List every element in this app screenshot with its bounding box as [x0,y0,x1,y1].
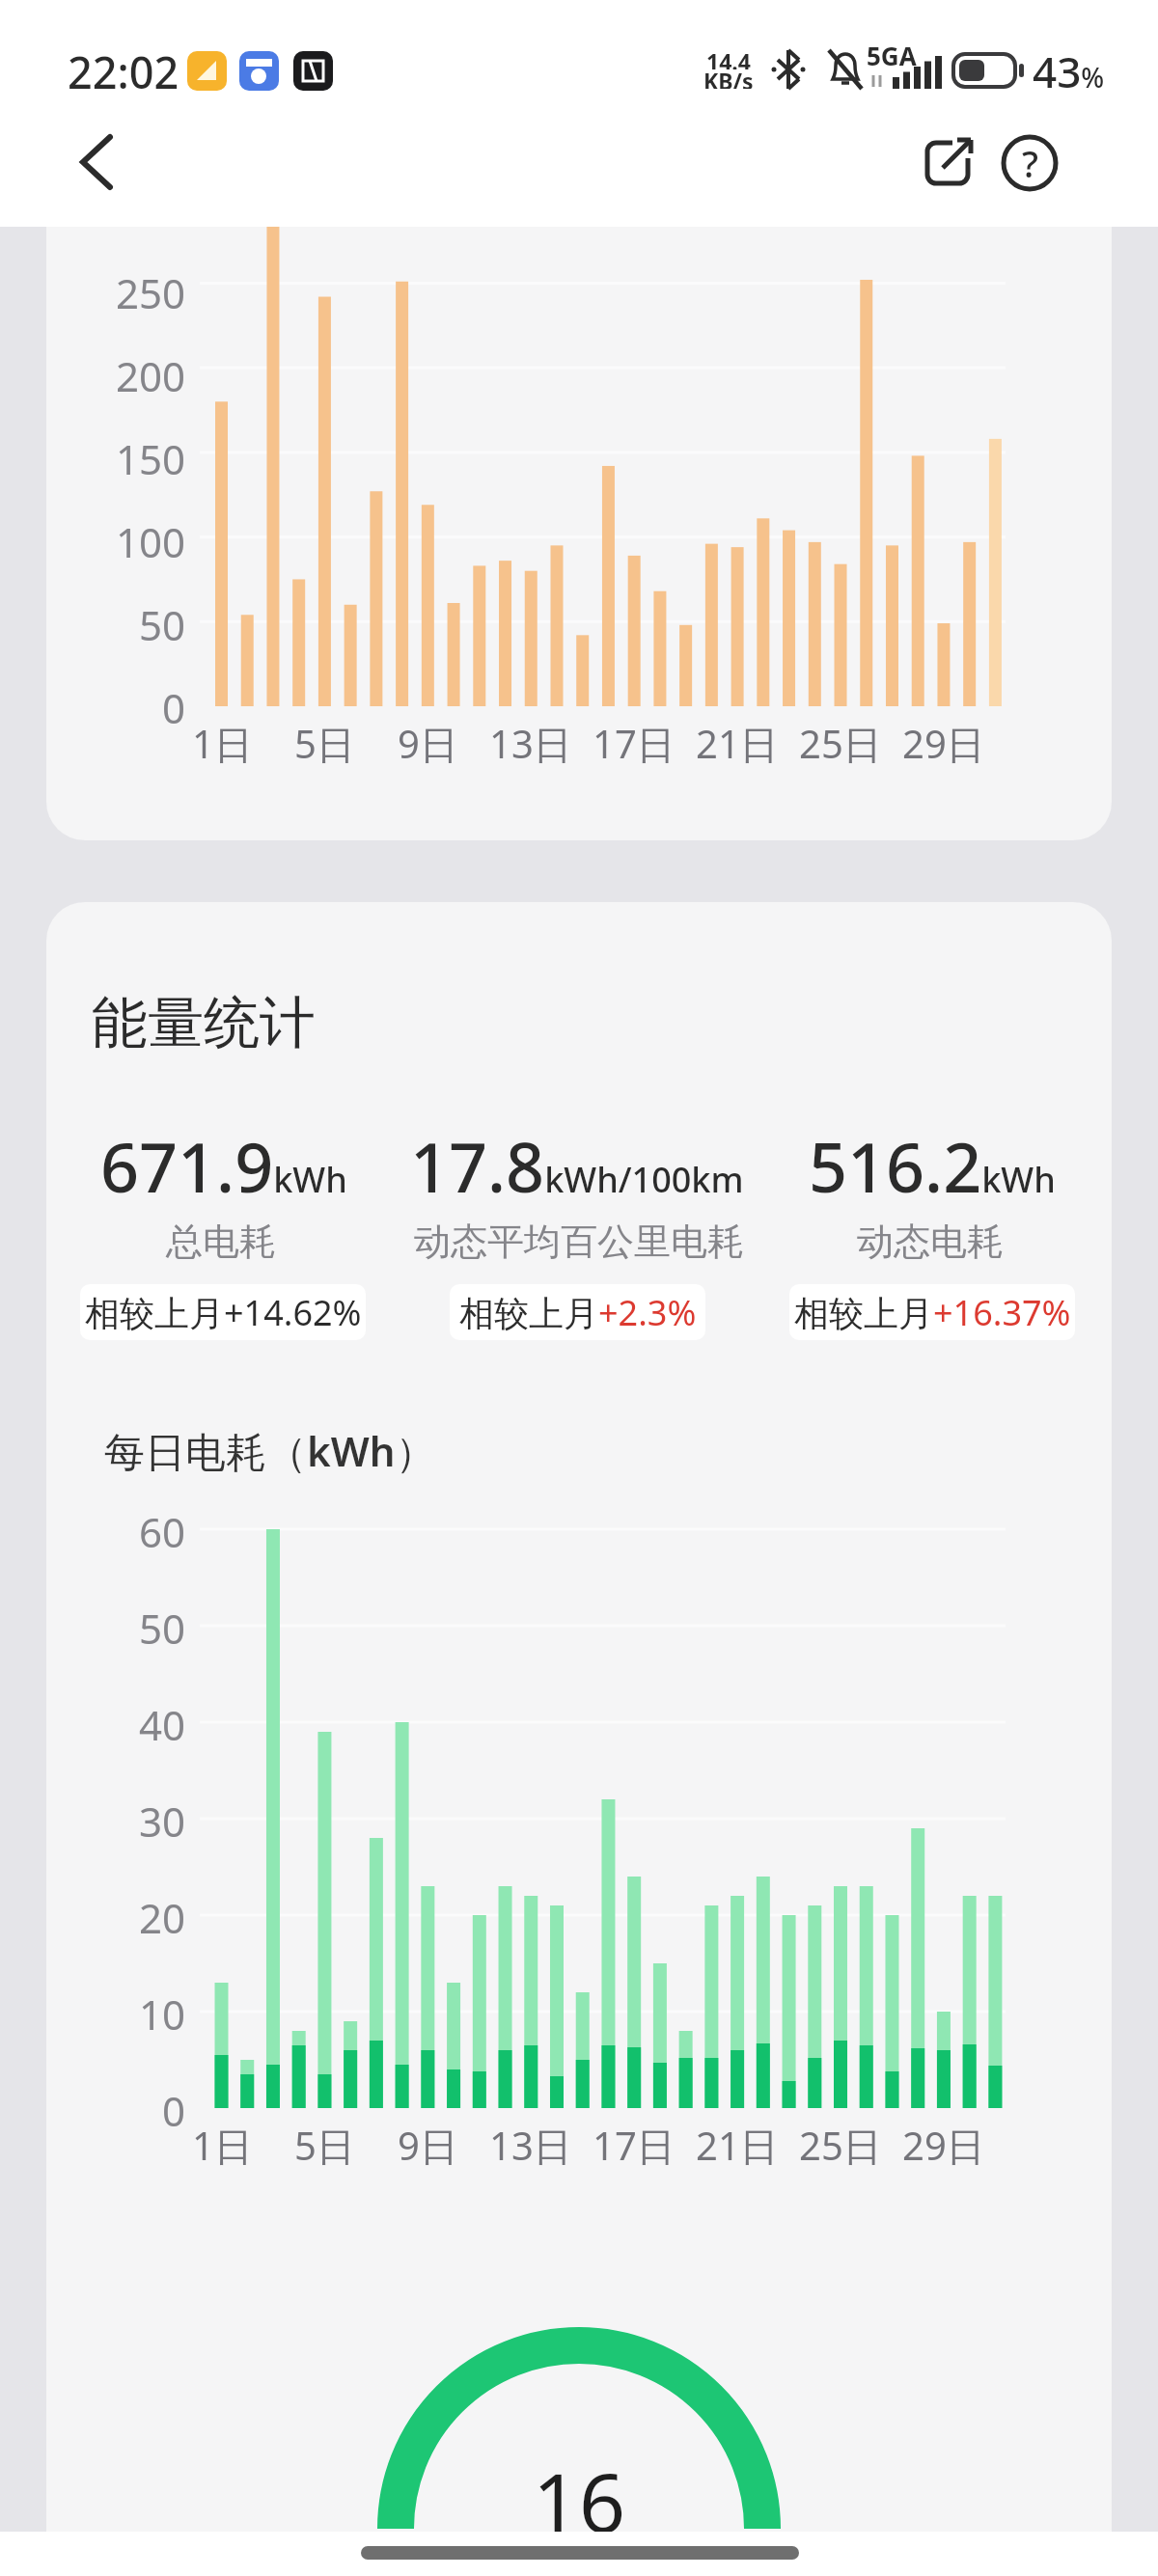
staticText: 25日 [799,2119,882,2169]
staticText: 150 [116,431,186,481]
staticText: 25日 [799,717,882,767]
staticText: KB/s [703,66,754,89]
staticText: 29日 [902,717,985,767]
button[interactable] [909,126,986,200]
staticText: 能量统计 [92,988,316,1058]
staticText: 动态电耗 [857,1219,1004,1265]
staticText: 21日 [696,2119,779,2169]
staticText: 60 [139,1504,186,1554]
staticText: 17.8kWh/100km [410,1120,744,1212]
button[interactable]: 相较上月+2.3% [450,1284,705,1340]
staticText: 22:02 [68,42,179,101]
staticText: 相较上月+14.62% [85,1289,362,1336]
staticText: 5日 [294,2119,355,2169]
staticText: 14.4 [706,46,751,69]
button[interactable]: 相较上月+14.62% [80,1284,366,1340]
staticText: 50 [139,1601,186,1651]
staticText: 250 [116,265,186,315]
staticText: 30 [139,1794,186,1844]
staticText: 每日电耗（kWh） [104,1423,436,1478]
staticText: 16 [533,2446,626,2533]
staticText: 相较上月+16.37% [794,1289,1071,1336]
staticText: 相较上月+2.3% [459,1289,697,1336]
staticText: 21日 [696,717,779,767]
staticText: 9日 [398,2119,458,2169]
staticText: 516.2kWh [809,1120,1056,1212]
staticText: 1日 [192,2119,253,2169]
staticText: 13日 [489,717,572,767]
staticText: 5日 [294,717,355,767]
staticText: 29日 [902,2119,985,2169]
staticText: 671.9kWh [100,1120,347,1212]
staticText: 20 [139,1890,186,1940]
staticText: 50 [139,597,186,647]
staticText: 总电耗 [166,1219,276,1265]
staticText: 13日 [489,2119,572,2169]
staticText: 17日 [593,2119,675,2169]
button[interactable]: 相较上月+16.37% [789,1284,1075,1340]
staticText: 40 [139,1697,186,1747]
staticText: 100 [116,514,186,564]
staticText: 200 [116,348,186,398]
staticText: 10 [139,1987,186,2037]
button[interactable] [60,125,137,203]
staticText: 17日 [593,717,675,767]
staticText: 0 [162,680,186,730]
staticText: 1日 [192,717,253,767]
staticText: ? [1022,138,1038,188]
staticText: 9日 [398,717,458,767]
button[interactable]: ? [994,126,1065,200]
staticText: 5GA [867,39,917,72]
staticText: 动态平均百公里电耗 [414,1219,744,1265]
staticText: 0 [162,2083,186,2133]
staticText: 43% [1033,42,1105,100]
